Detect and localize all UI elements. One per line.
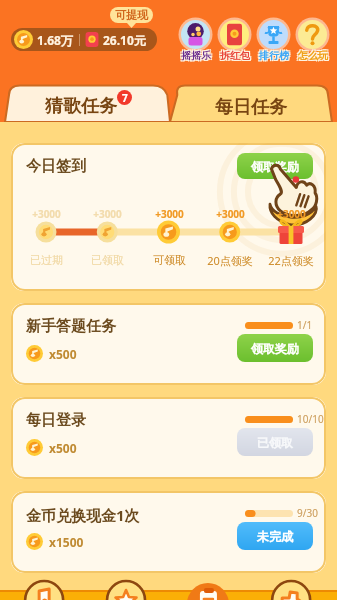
staticText: 拆红包 [220, 49, 250, 62]
staticText: +3000 [32, 207, 61, 221]
staticText: 拆红包 [219, 50, 249, 63]
staticText: 拆红包 [221, 50, 251, 63]
staticText: 金币兑换现金1次 [26, 505, 140, 525]
staticText: 可领取 [153, 253, 186, 267]
staticText: 已领取 [91, 253, 124, 267]
button[interactable]: 每日登录 [11, 397, 326, 479]
button[interactable]: 排行榜 [254, 20, 293, 62]
staticText: 拆红包 [221, 48, 251, 61]
button[interactable]: 1.68万 [11, 28, 157, 51]
staticText: x500 [49, 440, 77, 456]
staticText: +3000 [155, 207, 184, 221]
staticText: 26.10元 [103, 32, 146, 48]
staticText: 已领取 [257, 435, 293, 450]
button[interactable]: 已领取 [237, 428, 313, 456]
staticText: 领取奖励 [251, 159, 299, 174]
button[interactable]: 拆红包 [215, 20, 254, 62]
staticText: 怎么玩 [297, 48, 327, 61]
button[interactable]: 新手答题任务 [11, 303, 326, 385]
staticText: 摇摇乐 [182, 50, 212, 63]
staticText: 1/1 [297, 318, 313, 332]
staticText: 摇摇乐 [182, 48, 212, 61]
button[interactable]: 我的 [253, 590, 337, 600]
button[interactable]: 首页 [0, 590, 85, 600]
button[interactable]: 摇摇乐 [176, 20, 215, 62]
staticText: 怎么玩 [297, 50, 327, 63]
staticText: 今日签到 [26, 157, 86, 176]
button[interactable]: 未完成 [237, 522, 313, 550]
button[interactable]: 任务 [169, 590, 253, 600]
button[interactable]: 金币兑换现金1次 [11, 491, 326, 573]
staticText: 已过期 [30, 253, 63, 267]
staticText: 怎么玩 [299, 48, 329, 61]
staticText: 拆红包 [219, 48, 249, 61]
staticText: 怎么玩 [299, 50, 329, 63]
staticText: 可提现 [115, 8, 148, 22]
staticText: 摇摇乐 [181, 49, 211, 62]
button[interactable]: 猜歌任务 [5, 84, 171, 122]
staticText: 未完成 [257, 529, 293, 544]
staticText: x1500 [49, 534, 84, 550]
staticText: 每日登录 [26, 411, 86, 430]
staticText: 排行榜 [259, 49, 289, 62]
staticText: 领取奖励 [251, 341, 299, 356]
staticText: 每日任务 [215, 96, 287, 119]
staticText: +3000 [93, 207, 122, 221]
staticText: x500 [49, 346, 77, 362]
staticText: +3000 [216, 207, 245, 221]
staticText: 22点领奖 [268, 253, 314, 268]
staticText: 9/30 [297, 506, 318, 520]
staticText: 排行榜 [260, 50, 290, 63]
button[interactable]: 领取奖励 [237, 334, 313, 362]
staticText: 怎么玩 [298, 49, 328, 62]
button[interactable]: 领取奖励 [237, 153, 313, 179]
staticText: +3000 [277, 207, 306, 221]
button[interactable]: 怎么玩 [293, 20, 332, 62]
staticText: 排行榜 [258, 48, 288, 61]
staticText: 新手答题任务 [26, 317, 116, 336]
staticText: 摇摇乐 [180, 48, 210, 61]
staticText: 摇摇乐 [180, 50, 210, 63]
staticText: 20点领奖 [207, 253, 253, 268]
button[interactable]: 每日任务 [170, 84, 332, 122]
staticText: 10/10 [297, 412, 324, 426]
staticText: 排行榜 [260, 48, 290, 61]
staticText: 排行榜 [258, 50, 288, 63]
staticText: 7 [122, 91, 128, 105]
button[interactable]: 收藏 [85, 590, 169, 600]
staticText: 猜歌任务 [45, 95, 117, 118]
staticText: 1.68万 [37, 32, 73, 48]
